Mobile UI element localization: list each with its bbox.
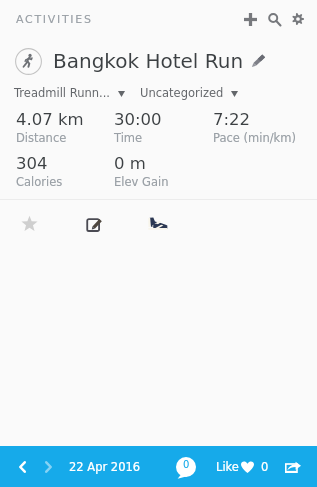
button[interactable]: Like — [216, 446, 269, 487]
staticText: Treadmill Runn... — [14, 86, 110, 99]
button[interactable]: Rename activity — [246, 49, 268, 71]
staticText: 4.07 km — [16, 110, 84, 129]
staticText: 304 — [16, 154, 48, 173]
button[interactable]: Gear and shoes — [128, 200, 186, 247]
button[interactable]: Add activity — [238, 7, 262, 31]
button[interactable]: Edit notes — [59, 200, 128, 247]
button[interactable]: 22 Apr 2016 — [69, 446, 141, 487]
button[interactable]: Treadmill Runn... — [14, 85, 125, 100]
staticText: Distance — [16, 131, 67, 144]
button[interactable]: Previous activity — [14, 446, 31, 487]
staticText: Like — [216, 460, 239, 473]
button[interactable]: Next activity — [40, 446, 57, 487]
button[interactable]: Comments — [170, 446, 202, 487]
staticText: 0 m — [114, 154, 146, 173]
staticText: 22 Apr 2016 — [69, 460, 141, 473]
staticText: ACTIVITIES — [16, 13, 93, 26]
button[interactable]: Search — [262, 7, 286, 31]
button[interactable]: Uncategorized — [140, 85, 238, 100]
staticText: Elev Gain — [114, 175, 169, 188]
staticText: Time — [114, 131, 143, 144]
button[interactable]: Share — [278, 446, 308, 487]
staticText: 0 — [183, 459, 190, 471]
button[interactable]: Favorite — [0, 200, 59, 247]
button[interactable]: Activity type — [15, 48, 42, 75]
staticText: Uncategorized — [140, 86, 224, 99]
staticText: 0 — [261, 460, 269, 473]
staticText: 30:00 — [114, 110, 162, 129]
staticText: Bangkok Hotel Run — [53, 49, 244, 72]
staticText: 7:22 — [213, 110, 251, 129]
staticText: Pace (min/km) — [213, 131, 296, 144]
staticText: Calories — [16, 175, 63, 188]
button[interactable]: Settings — [286, 7, 310, 31]
